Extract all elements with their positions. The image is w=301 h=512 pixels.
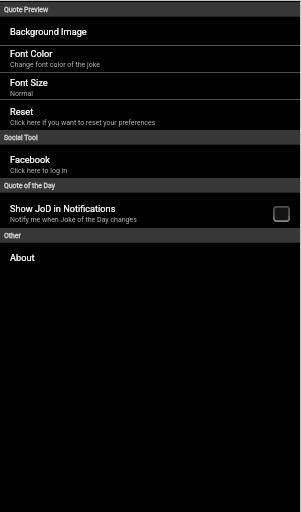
staticText: Quote Preview: [4, 6, 49, 14]
button[interactable]: Font Color: [0, 46, 301, 73]
staticText: Click here if you want to reset your pre…: [10, 119, 156, 127]
button[interactable]: Show JoD in Notifications: [0, 193, 301, 228]
staticText: Click here to log in: [10, 167, 68, 175]
staticText: Font Size: [10, 77, 48, 88]
button[interactable]: Font Size: [0, 73, 301, 100]
staticText: Normal: [10, 90, 34, 98]
staticText: Facebook: [10, 154, 50, 165]
staticText: Font Color: [10, 48, 53, 59]
staticText: Reset: [10, 106, 34, 117]
staticText: Quote of the Day: [4, 182, 56, 190]
button[interactable]: Background Image: [0, 17, 301, 46]
staticText: Show JoD in Notifications: [10, 203, 116, 214]
staticText: Social Tool: [4, 134, 38, 142]
staticText: Notify me when Joke of the Day changes: [10, 216, 137, 224]
other: Show Joke of the Day in notifications: [273, 206, 290, 222]
button[interactable]: Facebook: [0, 145, 301, 178]
staticText: Background Image: [10, 26, 87, 37]
button[interactable]: Reset: [0, 100, 301, 130]
staticText: About: [10, 252, 35, 263]
staticText: Other: [4, 232, 21, 240]
staticText: Change font color of the joke: [10, 61, 100, 69]
button[interactable]: About: [0, 243, 301, 271]
